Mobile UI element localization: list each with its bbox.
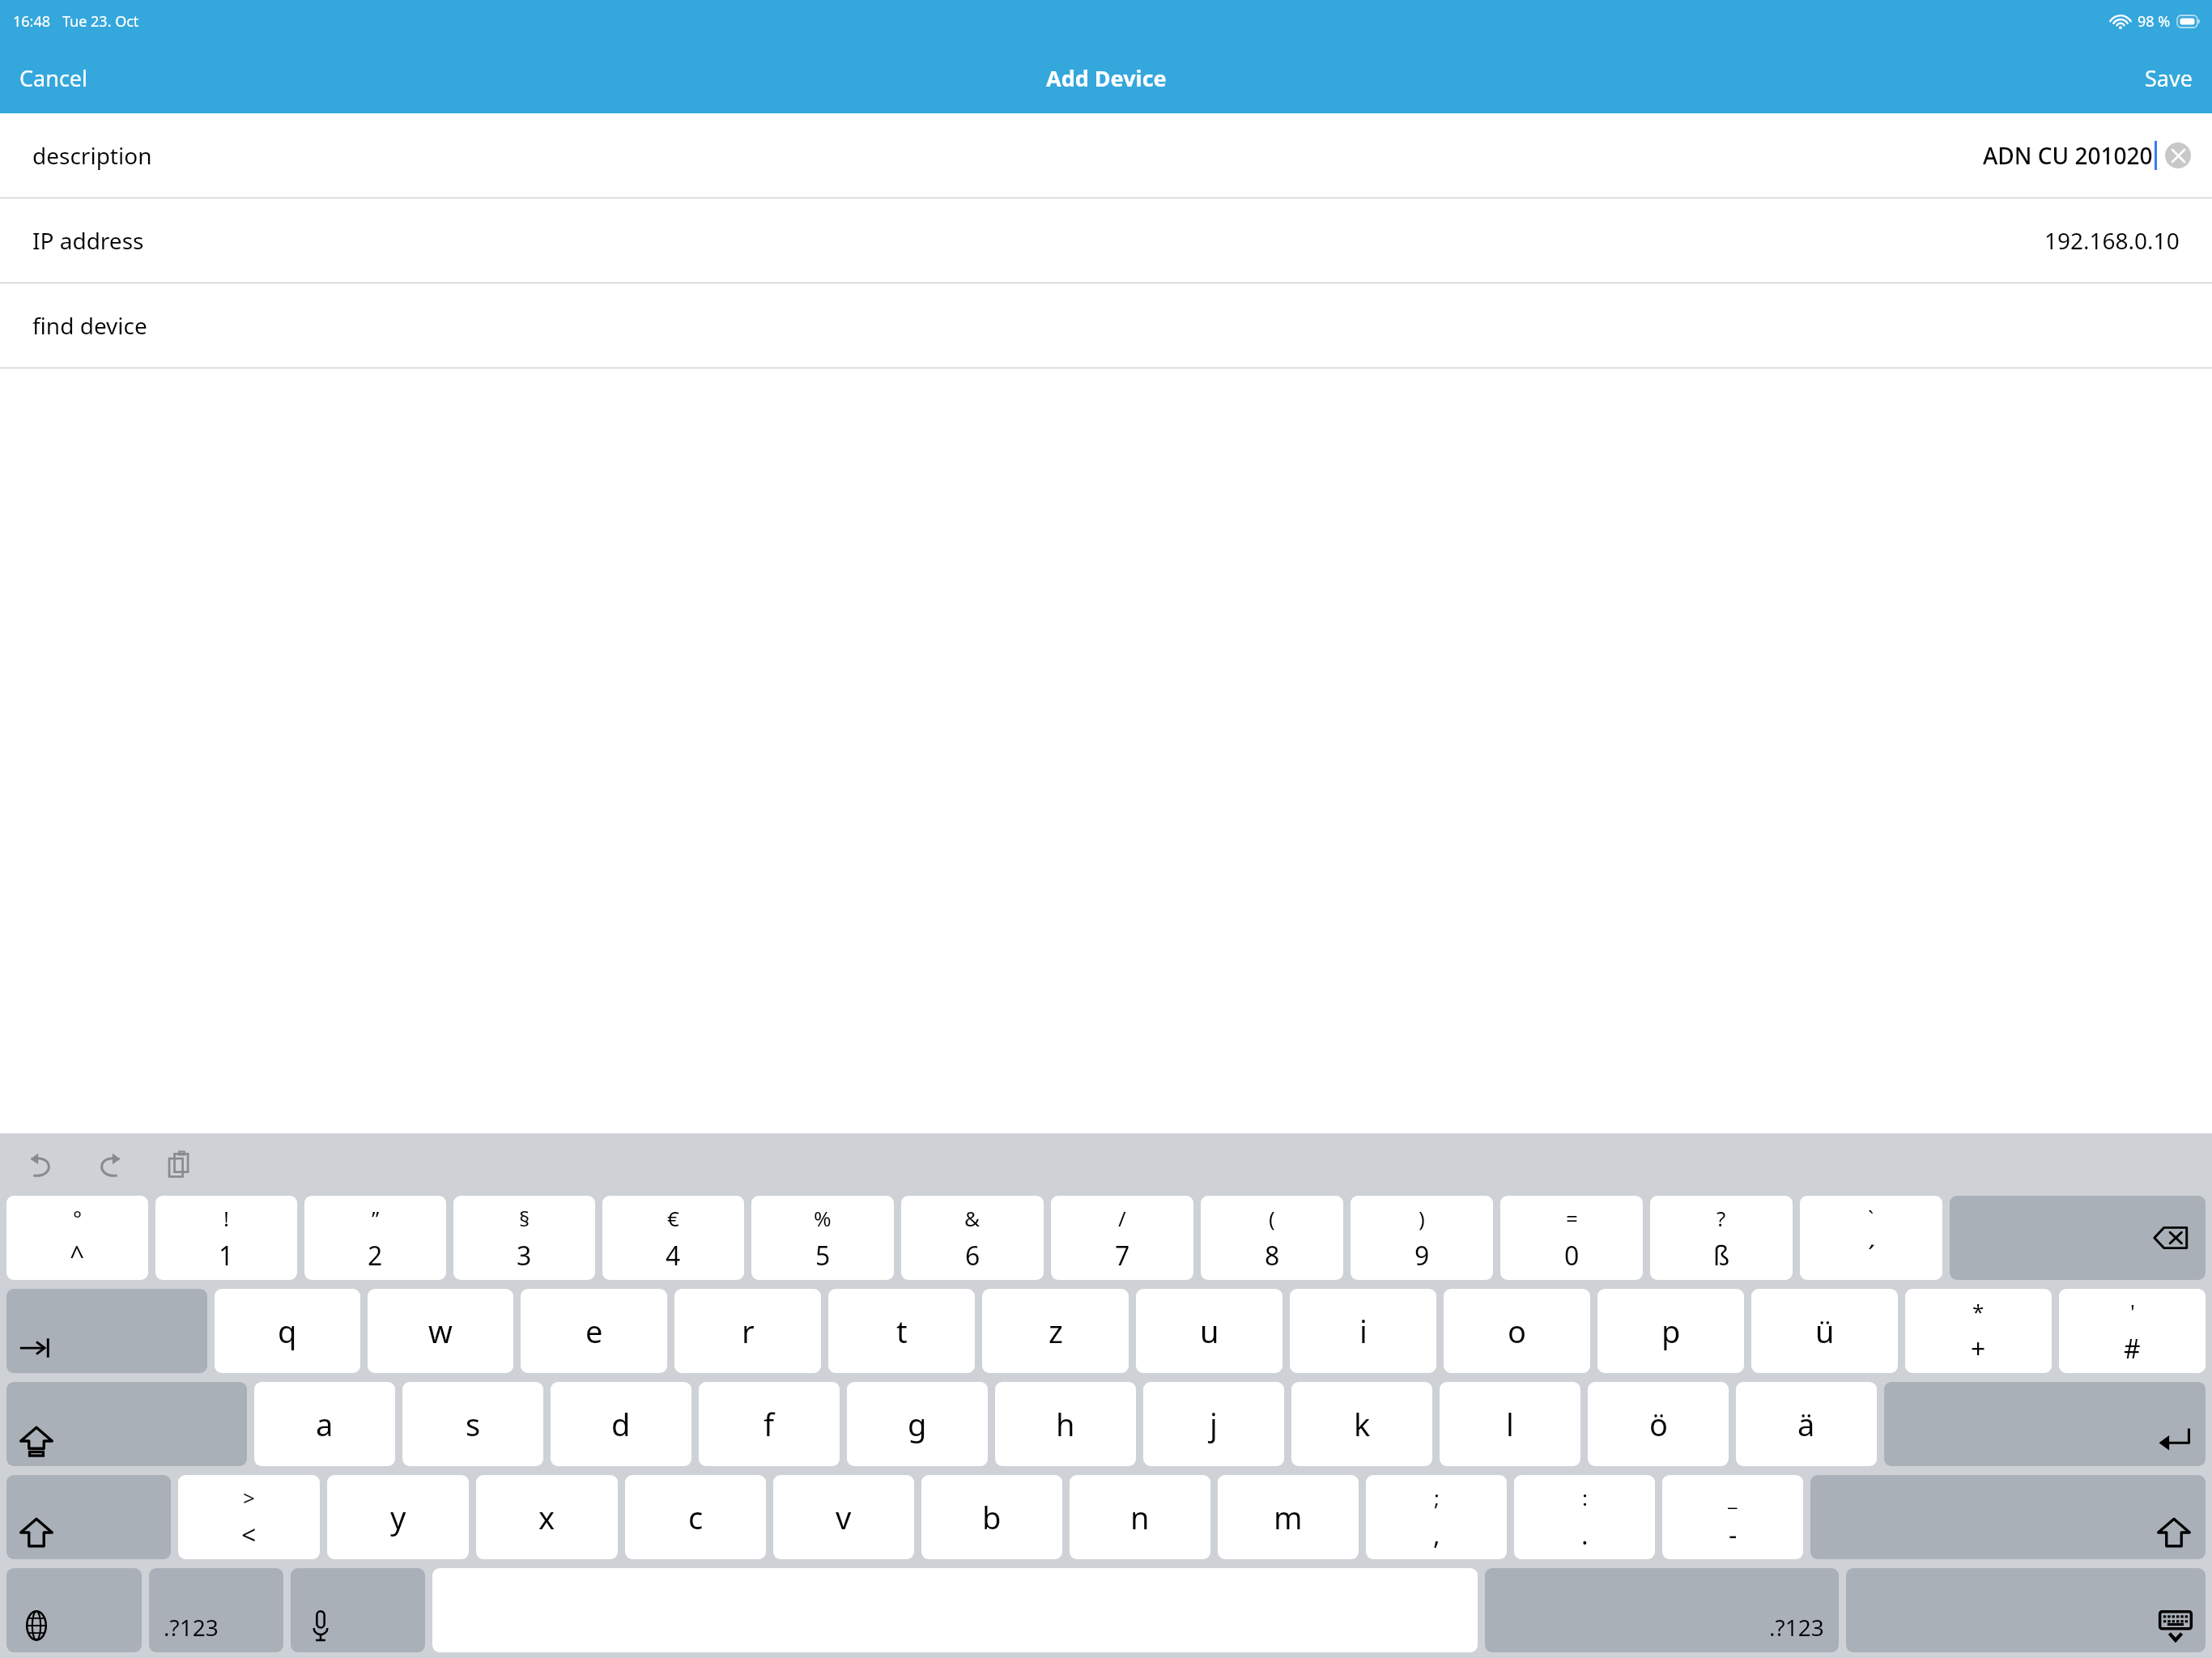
- button[interactable]: Redo: [87, 1142, 133, 1188]
- button[interactable]: w: [368, 1289, 513, 1373]
- staticText: m: [1274, 1496, 1303, 1538]
- button[interactable]: Hide keyboard: [1846, 1568, 2206, 1652]
- staticText: -: [1729, 1517, 1738, 1553]
- button[interactable]: Tab: [6, 1289, 207, 1373]
- button[interactable]: j: [1143, 1382, 1284, 1466]
- button[interactable]: .?123: [1485, 1568, 1839, 1652]
- button[interactable]: i: [1290, 1289, 1436, 1373]
- button[interactable]: Change keyboard: [6, 1568, 142, 1652]
- staticText: °: [73, 1204, 83, 1232]
- button[interactable]: r: [674, 1289, 821, 1373]
- staticText: h: [1056, 1403, 1075, 1445]
- button[interactable]: Dictate: [291, 1568, 425, 1652]
- button[interactable]: >: [178, 1475, 320, 1559]
- staticText: §: [519, 1204, 530, 1232]
- button[interactable]: °: [6, 1196, 148, 1280]
- staticText: z: [1049, 1310, 1063, 1352]
- staticText: r: [742, 1310, 755, 1352]
- button[interactable]: %: [751, 1196, 894, 1280]
- button[interactable]: ”: [304, 1196, 446, 1280]
- button[interactable]: o: [1444, 1289, 1590, 1373]
- button[interactable]: *: [1905, 1289, 2052, 1373]
- button[interactable]: l: [1440, 1382, 1580, 1466]
- button[interactable]: &: [901, 1196, 1044, 1280]
- staticText: Add Device: [1046, 63, 1167, 93]
- button[interactable]: ?: [1650, 1196, 1793, 1280]
- button[interactable]: v: [773, 1475, 914, 1559]
- button[interactable]: Backspace: [1950, 1196, 2206, 1280]
- staticText: =: [1566, 1204, 1578, 1232]
- button[interactable]: Caps lock: [6, 1382, 247, 1466]
- button[interactable]: Shift: [6, 1475, 171, 1559]
- staticText: l: [1506, 1403, 1514, 1445]
- button[interactable]: /: [1051, 1196, 1193, 1280]
- button[interactable]: q: [215, 1289, 360, 1373]
- button[interactable]: u: [1136, 1289, 1283, 1373]
- staticText: 6: [965, 1238, 981, 1273]
- button[interactable]: :: [1514, 1475, 1655, 1559]
- button[interactable]: f: [699, 1382, 840, 1466]
- staticText: ;: [1434, 1483, 1440, 1511]
- button[interactable]: !: [155, 1196, 297, 1280]
- staticText: _: [1728, 1483, 1738, 1511]
- staticText: Save: [2145, 63, 2193, 93]
- button[interactable]: p: [1597, 1289, 1744, 1373]
- button[interactable]: €: [602, 1196, 744, 1280]
- button[interactable]: e: [521, 1289, 667, 1373]
- staticText: t: [896, 1310, 908, 1352]
- staticText: 9: [1414, 1238, 1430, 1273]
- button[interactable]: ': [2059, 1289, 2206, 1373]
- button[interactable]: _: [1662, 1475, 1803, 1559]
- staticText: p: [1661, 1310, 1681, 1352]
- button[interactable]: Clear text: [2165, 142, 2191, 168]
- staticText: IP address: [32, 225, 144, 256]
- button[interactable]: §: [453, 1196, 595, 1280]
- staticText: 7: [1115, 1238, 1130, 1273]
- button[interactable]: ä: [1736, 1382, 1877, 1466]
- button[interactable]: k: [1291, 1382, 1432, 1466]
- button[interactable]: ): [1351, 1196, 1493, 1280]
- staticText: f: [764, 1403, 775, 1445]
- button[interactable]: (: [1201, 1196, 1343, 1280]
- button[interactable]: m: [1218, 1475, 1359, 1559]
- button[interactable]: b: [921, 1475, 1062, 1559]
- staticText: 192.168.0.10: [2044, 225, 2180, 256]
- staticText: v: [836, 1496, 852, 1538]
- button[interactable]: n: [1070, 1475, 1210, 1559]
- staticText: !: [223, 1204, 229, 1232]
- button[interactable]: .?123: [149, 1568, 283, 1652]
- staticText: ': [2130, 1297, 2135, 1325]
- button[interactable]: find device: [0, 283, 2212, 368]
- button[interactable]: ü: [1751, 1289, 1898, 1373]
- staticText: 5: [815, 1238, 831, 1273]
- button[interactable]: s: [402, 1382, 543, 1466]
- button[interactable]: Return: [1884, 1382, 2206, 1466]
- button[interactable]: Save: [2125, 50, 2212, 106]
- staticText: Tue 23. Oct: [62, 11, 139, 32]
- button[interactable]: a: [254, 1382, 395, 1466]
- button[interactable]: c: [625, 1475, 766, 1559]
- staticText: 2: [368, 1238, 383, 1273]
- button[interactable]: Paste: [157, 1142, 202, 1188]
- staticText: 4: [666, 1238, 681, 1273]
- button[interactable]: g: [847, 1382, 988, 1466]
- button[interactable]: description: [0, 113, 2212, 198]
- button[interactable]: y: [327, 1475, 469, 1559]
- button[interactable]: ö: [1588, 1382, 1729, 1466]
- button[interactable]: z: [982, 1289, 1129, 1373]
- button[interactable]: Cancel: [0, 50, 108, 106]
- button[interactable]: Space: [432, 1568, 1478, 1652]
- button[interactable]: IP address: [0, 198, 2212, 283]
- staticText: e: [585, 1310, 603, 1352]
- button[interactable]: ;: [1366, 1475, 1507, 1559]
- button[interactable]: d: [551, 1382, 691, 1466]
- button[interactable]: x: [476, 1475, 618, 1559]
- button[interactable]: Shift: [1810, 1475, 2206, 1559]
- button[interactable]: =: [1500, 1196, 1643, 1280]
- button[interactable]: Undo: [18, 1142, 63, 1188]
- button[interactable]: t: [828, 1289, 975, 1373]
- staticText: 3: [517, 1238, 532, 1273]
- button[interactable]: h: [995, 1382, 1136, 1466]
- staticText: .: [1581, 1517, 1589, 1553]
- button[interactable]: `: [1800, 1196, 1942, 1280]
